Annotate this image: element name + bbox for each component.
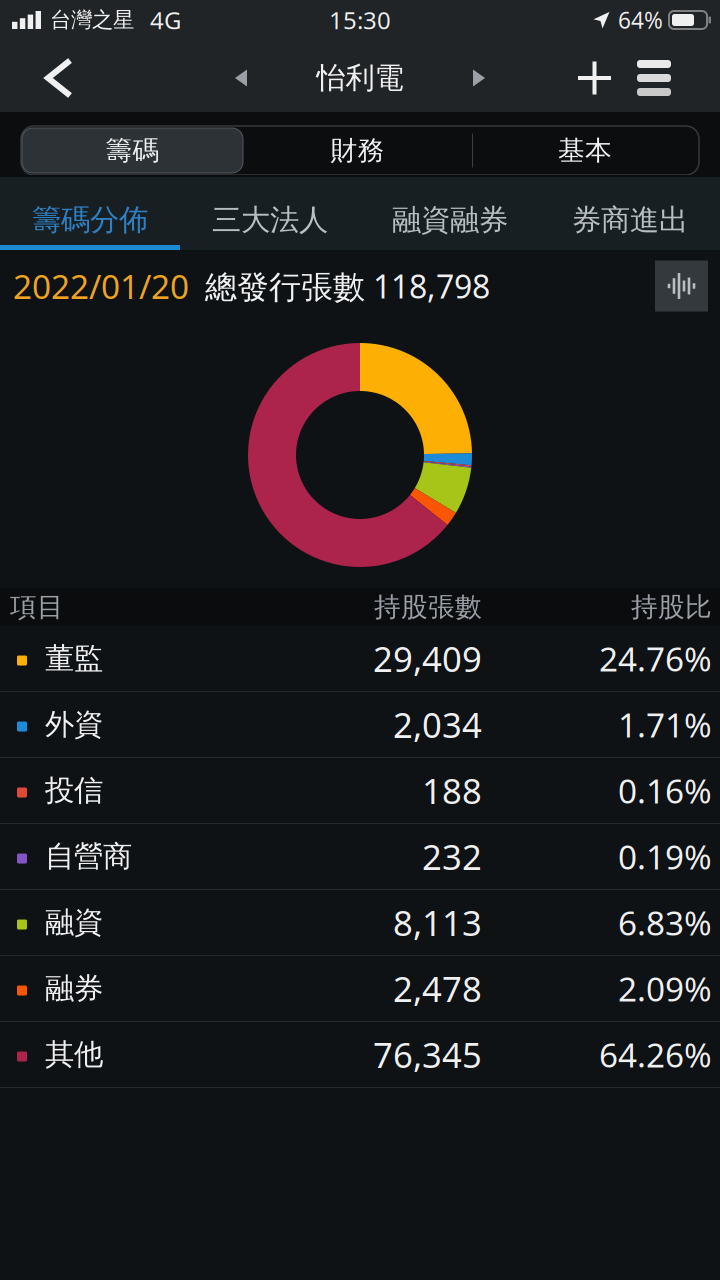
staticText: 64% — [618, 5, 663, 35]
button[interactable]: 自營商 — [0, 824, 720, 890]
staticText: 其他 — [45, 1036, 103, 1072]
staticText: 29,409 — [373, 635, 482, 681]
staticText: 持股比 — [631, 591, 712, 623]
button[interactable]: 籌碼 — [22, 128, 243, 173]
button[interactable]: 投信 — [0, 758, 720, 824]
button[interactable]: 三大法人 — [180, 177, 360, 250]
staticText: 76,345 — [373, 1031, 482, 1077]
button[interactable]: Next stock — [427, 44, 531, 112]
staticText: 2022/01/20 — [13, 264, 189, 308]
staticText: 籌碼 — [105, 134, 159, 167]
button[interactable]: 融資 — [0, 890, 720, 956]
button[interactable]: 其他 — [0, 1022, 720, 1088]
staticText: 2,478 — [393, 965, 482, 1011]
staticText: 232 — [422, 833, 482, 879]
staticText: 0.19% — [618, 834, 712, 879]
staticText: 2.09% — [618, 966, 712, 1011]
button[interactable]: 融券 — [0, 956, 720, 1022]
staticText: 投信 — [45, 772, 103, 808]
staticText: 1.71% — [618, 702, 712, 747]
button[interactable]: 籌碼分佈 — [0, 177, 180, 250]
staticText: 財務 — [330, 134, 384, 167]
staticText: 籌碼分佈 — [32, 202, 148, 238]
button[interactable]: 董監 — [0, 626, 720, 692]
button[interactable]: 外資 — [0, 692, 720, 758]
staticText: 融資融券 — [392, 202, 508, 238]
button[interactable]: Menu — [624, 44, 720, 112]
staticText: 15:30 — [329, 4, 391, 36]
button[interactable]: 基本 — [472, 128, 698, 173]
staticText: 總發行張數 118,798 — [205, 265, 490, 307]
staticText: 融資 — [45, 904, 103, 940]
button[interactable]: Previous stock — [189, 44, 293, 112]
staticText: 項目 — [10, 591, 64, 623]
staticText: 外資 — [45, 706, 103, 742]
staticText: 8,113 — [393, 899, 482, 945]
staticText: 融券 — [45, 970, 103, 1006]
staticText: 0.16% — [618, 768, 712, 813]
staticText: 三大法人 — [212, 202, 328, 238]
staticText: 4G — [150, 4, 181, 36]
button[interactable]: 融資融券 — [360, 177, 540, 250]
staticText: 24.76% — [599, 636, 712, 681]
button[interactable]: Add — [556, 44, 624, 112]
staticText: 6.83% — [618, 900, 712, 945]
staticText: 自營商 — [45, 838, 132, 874]
button[interactable]: Chart view — [655, 260, 708, 311]
staticText: 基本 — [558, 134, 612, 167]
staticText: 台灣之星 — [50, 7, 134, 33]
staticText: 董監 — [45, 640, 103, 676]
staticText: 188 — [422, 767, 482, 813]
staticText: 怡利電 — [316, 60, 403, 96]
staticText: 券商進出 — [572, 202, 688, 238]
button[interactable]: 券商進出 — [540, 177, 720, 250]
staticText: 持股張數 — [374, 591, 482, 623]
staticText: 2,034 — [393, 701, 482, 747]
staticText: 64.26% — [599, 1032, 712, 1077]
button[interactable]: Back — [0, 44, 104, 112]
button[interactable]: 財務 — [243, 128, 472, 173]
